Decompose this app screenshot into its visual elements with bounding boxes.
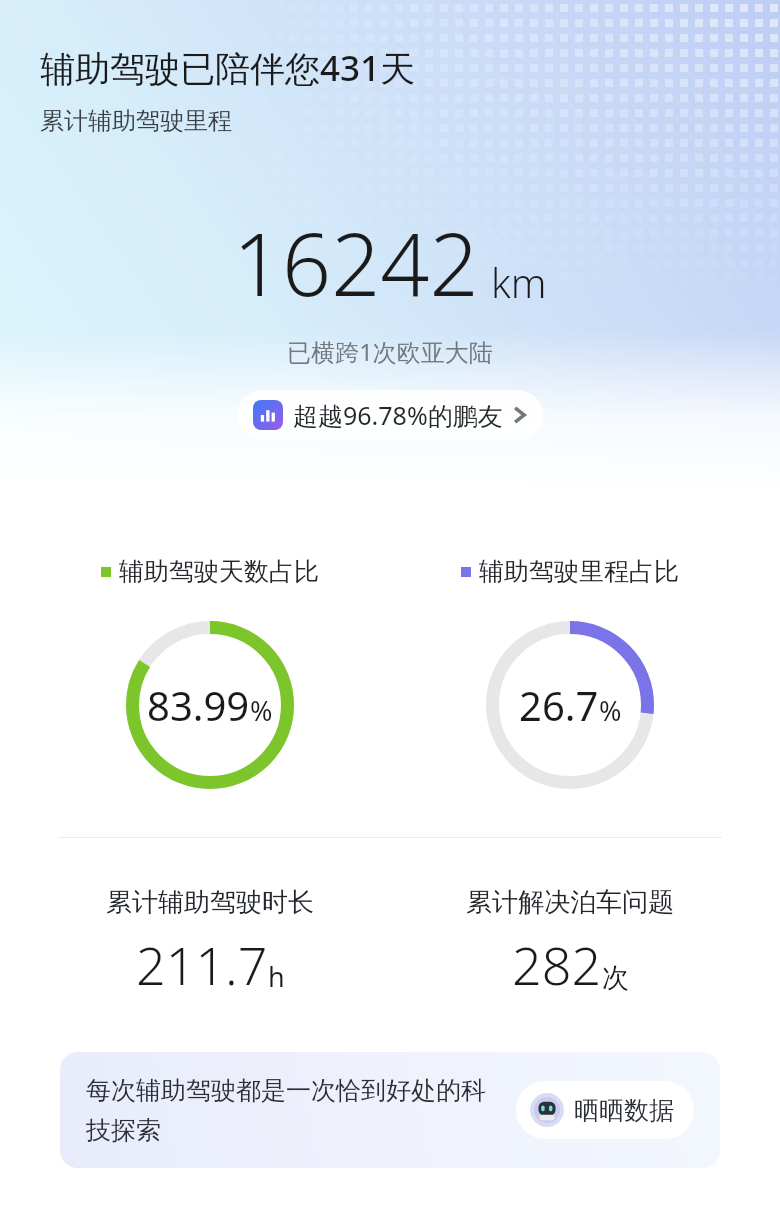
staticText: % bbox=[250, 692, 273, 729]
staticText: km bbox=[491, 255, 547, 309]
staticText: 16242 bbox=[233, 204, 479, 321]
staticText: 每次辅助驾驶都是一次恰到好处的科技探索 bbox=[86, 1075, 500, 1146]
staticText: h bbox=[268, 958, 285, 995]
staticText: 累计辅助驾驶时长 bbox=[106, 886, 314, 919]
staticText: 26.7 bbox=[519, 678, 599, 732]
staticText: 累计解决泊车问题 bbox=[466, 886, 674, 919]
staticText: 累计辅助驾驶里程 bbox=[40, 106, 232, 136]
staticText: 282 bbox=[512, 929, 602, 1000]
staticText: 次 bbox=[602, 961, 629, 995]
staticText: 211.7 bbox=[136, 929, 268, 1000]
button[interactable]: 超越96.78%的鹏友 bbox=[237, 390, 543, 440]
staticText: 已横跨1次欧亚大陆 bbox=[0, 335, 780, 368]
staticText: 辅助驾驶天数占比 bbox=[119, 556, 319, 587]
staticText: 辅助驾驶已陪伴您431天 bbox=[40, 44, 416, 92]
button[interactable]: 晒晒数据 bbox=[516, 1081, 694, 1139]
staticText: 晒晒数据 bbox=[574, 1095, 674, 1126]
staticText: 超越96.78%的鹏友 bbox=[293, 398, 503, 432]
staticText: 83.99 bbox=[147, 678, 250, 732]
staticText: % bbox=[599, 692, 622, 729]
staticText: 辅助驾驶里程占比 bbox=[479, 556, 679, 587]
